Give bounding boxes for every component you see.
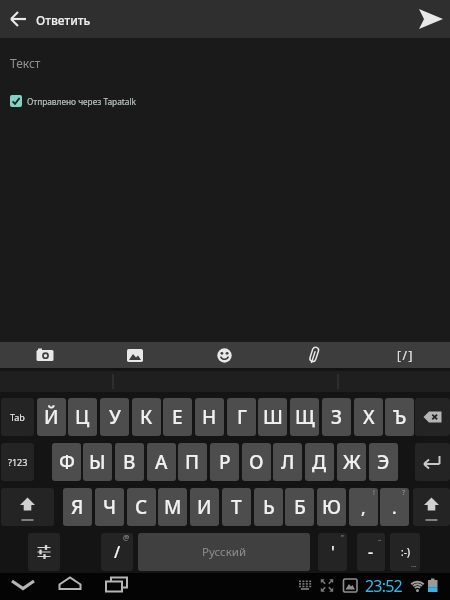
staticText: Ответить: [36, 12, 91, 28]
staticText: Ф: [59, 449, 75, 475]
button[interactable]: Б: [285, 488, 314, 526]
button[interactable]: Русский: [138, 533, 310, 571]
button[interactable]: Р: [210, 443, 239, 481]
staticText: Д: [312, 449, 327, 475]
button[interactable]: Э: [369, 443, 398, 481]
button[interactable]: ,: [349, 488, 378, 526]
staticText: Е: [172, 404, 183, 430]
button[interactable]: :-): [390, 533, 420, 571]
staticText: Х: [363, 404, 375, 430]
button[interactable]: М: [158, 488, 187, 526]
button[interactable]: [48, 573, 92, 600]
button[interactable]: Ь: [254, 488, 283, 526]
button[interactable]: /: [101, 533, 133, 571]
button[interactable]: ': [318, 533, 347, 571]
staticText: ...: [411, 560, 417, 570]
button[interactable]: Ш: [258, 398, 287, 436]
staticText: Ю: [322, 494, 342, 520]
staticText: Ц: [75, 404, 90, 430]
staticText: [/]: [397, 347, 414, 363]
staticText: Ж: [343, 449, 361, 475]
staticText: М: [164, 494, 182, 520]
button[interactable]: Ы: [83, 443, 112, 481]
staticText: -: [368, 541, 374, 563]
button[interactable]: Д: [305, 443, 334, 481]
button[interactable]: [/]: [360, 342, 450, 368]
button[interactable]: [28, 533, 60, 571]
button[interactable]: ?123: [1, 443, 34, 481]
button[interactable]: И: [190, 488, 219, 526]
button[interactable]: Й: [37, 398, 66, 436]
button[interactable]: Ц: [68, 398, 97, 436]
button[interactable]: Е: [163, 398, 192, 436]
button[interactable]: К: [132, 398, 161, 436]
staticText: Ч: [103, 494, 117, 520]
button[interactable]: Ю: [317, 488, 346, 526]
button[interactable]: О: [242, 443, 271, 481]
staticText: Р: [219, 449, 231, 475]
staticText: @: [123, 533, 130, 543]
button[interactable]: [1, 573, 45, 600]
button[interactable]: [180, 342, 270, 368]
staticText: Н: [202, 404, 217, 430]
button[interactable]: Я: [63, 488, 92, 526]
staticText: Я: [71, 494, 84, 520]
button[interactable]: [270, 342, 360, 368]
staticText: Ъ: [393, 404, 407, 430]
staticText: Б: [294, 494, 306, 520]
button[interactable]: [413, 488, 450, 526]
button[interactable]: Н: [195, 398, 224, 436]
staticText: _: [378, 533, 382, 543]
button[interactable]: А: [147, 443, 176, 481]
button[interactable]: Л: [273, 443, 302, 481]
staticText: Текст: [10, 55, 41, 71]
button[interactable]: [0, 342, 90, 368]
staticText: Э: [377, 449, 390, 475]
staticText: З: [331, 404, 343, 430]
button[interactable]: Х: [354, 398, 383, 436]
staticText: Отправлено через Tapatalk: [27, 96, 137, 107]
button[interactable]: Ф: [52, 443, 81, 481]
button[interactable]: Щ: [290, 398, 319, 436]
button[interactable]: В: [115, 443, 144, 481]
button[interactable]: С: [127, 488, 156, 526]
staticText: Ш: [263, 404, 283, 430]
button[interactable]: [415, 398, 450, 436]
button[interactable]: [1, 488, 54, 526]
button[interactable]: У: [100, 398, 129, 436]
button[interactable]: [415, 443, 450, 481]
button[interactable]: Отправлено через Tapatalk: [6, 90, 176, 112]
staticText: ?123: [8, 456, 28, 468]
button[interactable]: З: [322, 398, 351, 436]
staticText: .: [392, 496, 397, 519]
staticText: !: [373, 488, 375, 498]
button[interactable]: [90, 342, 180, 368]
staticText: Ь: [263, 494, 275, 520]
staticText: Tab: [10, 411, 25, 423]
button[interactable]: Ъ: [385, 398, 414, 436]
button[interactable]: [0, 0, 34, 38]
button[interactable]: Г: [227, 398, 256, 436]
button[interactable]: -: [357, 533, 385, 571]
button[interactable]: П: [178, 443, 207, 481]
staticText: ": [341, 533, 344, 543]
staticText: К: [140, 404, 153, 430]
staticText: У: [109, 404, 121, 430]
button[interactable]: [95, 573, 139, 600]
staticText: 23:52: [365, 575, 402, 597]
button[interactable]: Т: [222, 488, 251, 526]
staticText: Ы: [89, 449, 106, 475]
button[interactable]: [410, 0, 450, 38]
staticText: П: [185, 449, 200, 475]
button[interactable]: Tab: [1, 398, 34, 436]
staticText: И: [197, 494, 212, 520]
staticText: Л: [281, 449, 295, 475]
button[interactable]: Ж: [337, 443, 366, 481]
button[interactable]: .: [380, 488, 409, 526]
staticText: ': [331, 541, 335, 563]
staticText: Т: [231, 494, 242, 520]
button[interactable]: Ч: [95, 488, 124, 526]
staticText: /: [114, 541, 121, 563]
staticText: ?: [402, 488, 406, 498]
staticText: С: [135, 494, 148, 520]
